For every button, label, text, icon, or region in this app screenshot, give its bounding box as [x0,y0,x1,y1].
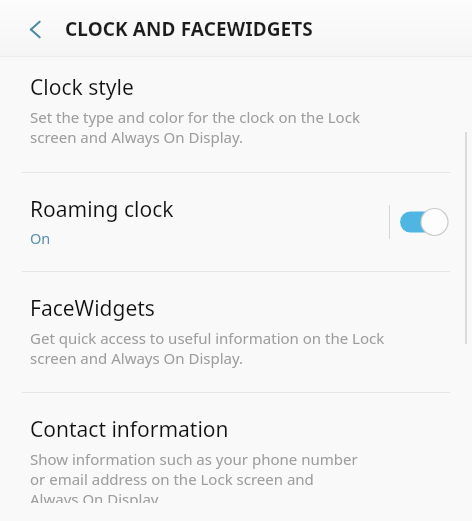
staticText: Set the type and color for the clock on … [30,107,360,127]
button[interactable]: Clock style [0,73,472,172]
staticText: Roaming clock [30,195,174,224]
staticText: Clock style [30,73,134,102]
staticText: screen and Always On Display. [30,127,244,147]
staticText: Get quick access to useful information o… [30,328,385,348]
staticText: FaceWidgets [30,294,155,323]
staticText: or email address on the Lock screen and [30,469,314,489]
staticText: On [30,228,51,248]
button[interactable]: Contact information [0,393,472,521]
staticText: screen and Always On Display. [30,348,244,368]
staticText: Contact information [30,415,229,444]
staticText: Always On Display. [30,489,162,503]
button[interactable]: Roaming clock, on [400,201,458,243]
staticText: Show information such as your phone numb… [30,449,358,469]
button[interactable]: Navigate up [13,7,57,51]
button[interactable]: FaceWidgets [0,272,472,392]
button[interactable]: Roaming clock [0,173,472,271]
staticText: CLOCK AND FACEWIDGETS [65,16,313,42]
